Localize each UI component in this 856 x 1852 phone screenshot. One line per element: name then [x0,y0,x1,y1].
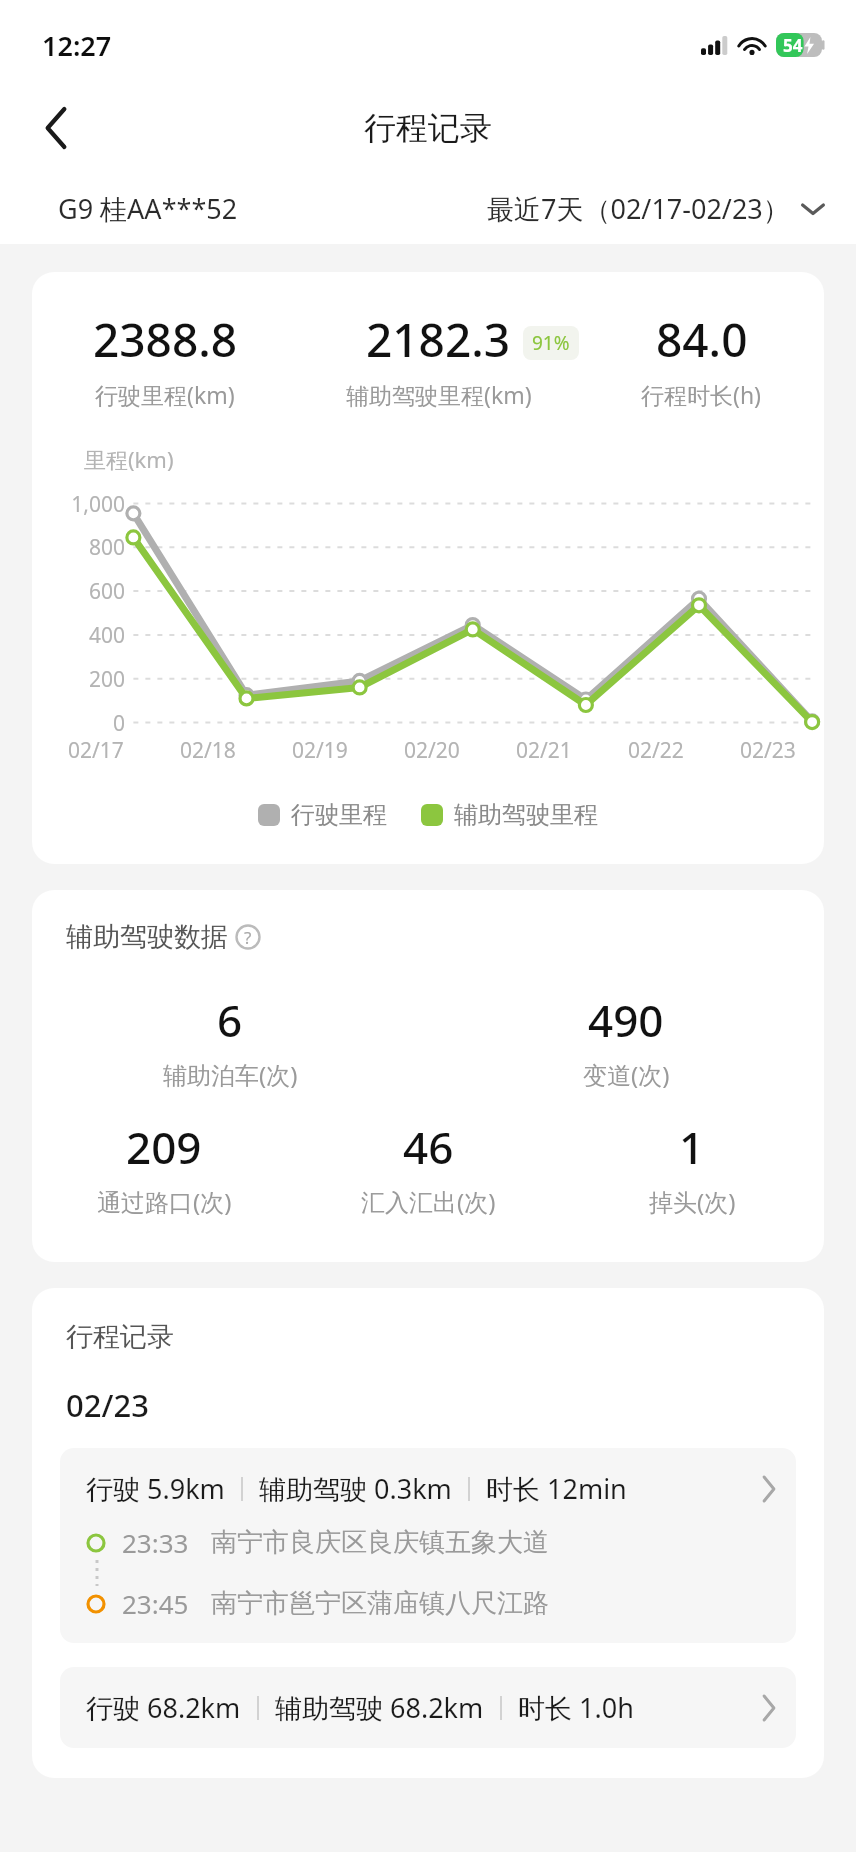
staticText: 02/22 [628,736,684,765]
staticText: 2388.8 [93,308,238,371]
staticText: ? [244,926,252,949]
staticText: 行程记录 [66,1320,174,1354]
staticText: 行驶 68.2km [86,1689,241,1726]
staticText: 1 [679,1117,705,1177]
staticText: 02/23 [740,736,796,765]
staticText: 变道(次) [583,1058,670,1091]
staticText: 0 [112,709,125,738]
staticText: 23:45 [122,1586,189,1621]
other: Details [762,1696,776,1720]
staticText: 02/17 [68,736,124,765]
staticText: 12:27 [42,27,112,64]
staticText: 02/19 [292,736,348,765]
staticText: 辅助驾驶数据 [66,920,228,954]
staticText: 54 [783,34,803,57]
staticText: 600 [88,577,125,606]
button[interactable]: 行驶 5.9km [60,1448,796,1643]
staticText: 时长 12min [486,1470,627,1507]
staticText: 400 [88,621,125,650]
other: Details [762,1477,776,1501]
staticText: 行驶里程(km) [95,379,235,410]
button[interactable]: Back [24,96,88,160]
staticText: 23:33 [122,1525,189,1560]
staticText: 02/20 [404,736,460,765]
staticText: 6 [217,990,243,1050]
staticText: 辅助泊车(次) [163,1058,298,1091]
staticText: 209 [126,1117,202,1177]
staticText: 南宁市良庆区良庆镇五象大道 [211,1526,549,1559]
staticText: 通过路口(次) [97,1185,232,1218]
staticText: 行驶 5.9km [86,1470,225,1507]
staticText: 200 [88,665,125,694]
staticText: 南宁市邕宁区蒲庙镇八尺江路 [211,1587,549,1620]
button[interactable]: 行驶 68.2km [60,1667,796,1748]
staticText: 掉头(次) [649,1185,736,1218]
staticText: 02/23 [66,1384,149,1426]
staticText: 2182.3 [366,308,511,371]
staticText: 辅助驾驶 68.2km [275,1689,484,1726]
staticText: 91% [532,330,570,356]
staticText: 行程时长(h) [641,379,762,410]
button[interactable]: 辅助驾驶数据 [66,920,261,954]
button[interactable]: 最近7天（02/17-02/23） [487,190,826,227]
staticText: 最近7天（02/17-02/23） [487,190,790,227]
staticText: 行驶里程 [291,800,387,830]
other: Info [235,924,261,950]
staticText: 行程记录 [364,108,492,148]
staticText: 汇入汇出(次) [361,1185,496,1218]
staticText: G9 桂AA***52 [58,190,238,227]
staticText: 里程(km) [84,444,174,474]
staticText: 02/18 [180,736,236,765]
staticText: 辅助驾驶里程(km) [346,379,532,410]
staticText: 02/21 [516,736,572,765]
staticText: 46 [403,1117,454,1177]
staticText: 800 [88,533,125,562]
staticText: 时长 1.0h [518,1689,634,1726]
staticText: 辅助驾驶 0.3km [259,1470,452,1507]
staticText: 辅助驾驶里程 [454,800,598,830]
staticText: 84.0 [656,308,748,371]
staticText: 490 [588,990,664,1050]
staticText: 1,000 [71,490,125,519]
